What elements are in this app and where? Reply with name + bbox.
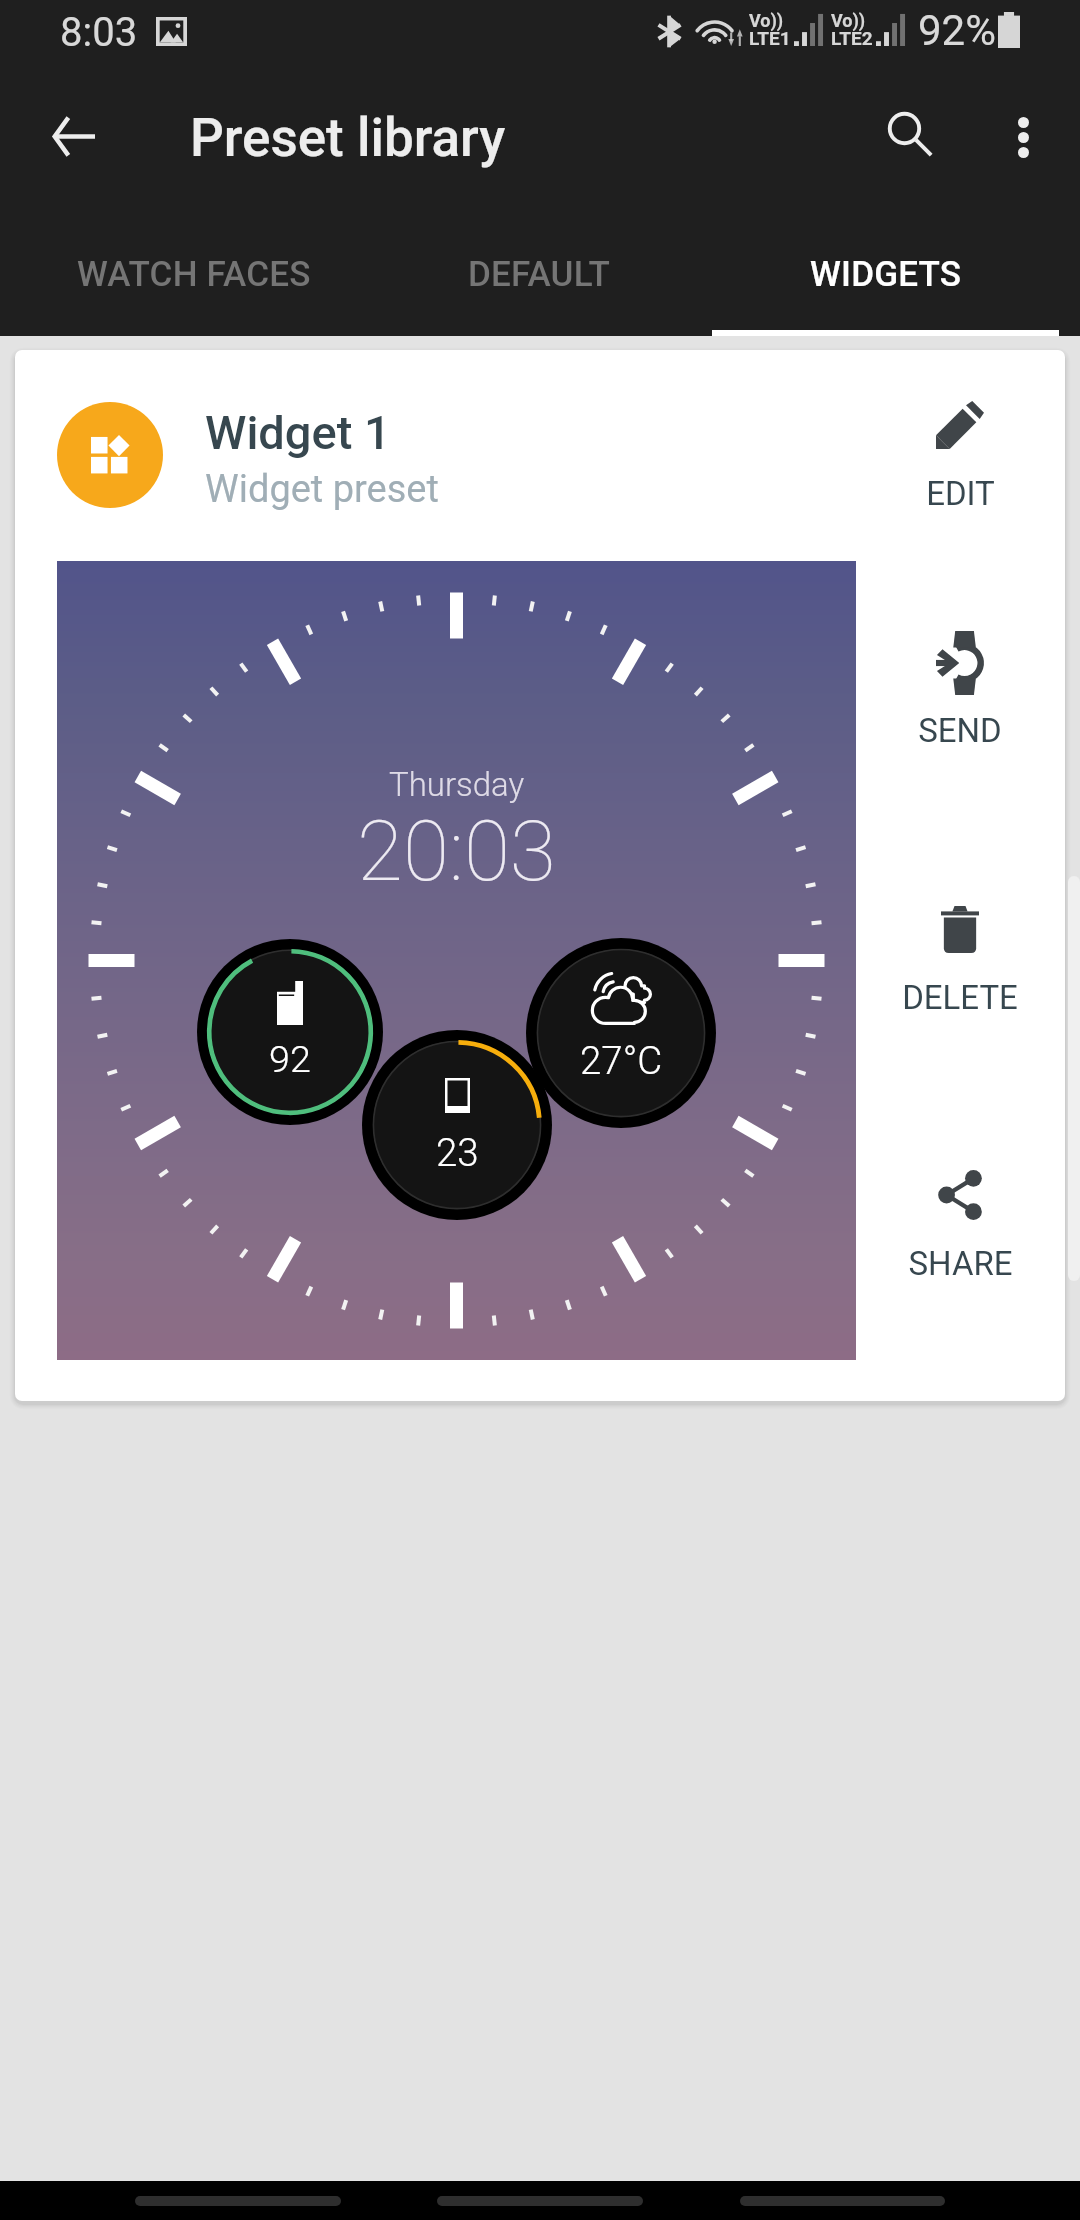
button[interactable]: SHARE [855, 1169, 1065, 1344]
staticText: DEFAULT [468, 254, 611, 295]
staticText: WIDGETS [810, 254, 962, 295]
staticText: 8:03 [60, 9, 138, 56]
button[interactable]: DEFAULT [366, 230, 713, 336]
staticText: 27°C [580, 1038, 663, 1083]
button[interactable]: Search [841, 66, 981, 206]
button[interactable]: SEND [855, 631, 1065, 806]
button[interactable]: WATCH FACES [20, 230, 367, 336]
button[interactable]: DELETE [855, 906, 1065, 1081]
staticText: SHARE [908, 1244, 1013, 1283]
staticText: LTE2 [831, 27, 873, 49]
staticText: Widget preset [205, 467, 439, 512]
button[interactable]: Back [0, 66, 147, 206]
button[interactable]: More options [953, 66, 1080, 206]
staticText: Thursday [389, 765, 525, 804]
staticText: Preset library [190, 107, 506, 169]
staticText: EDIT [926, 474, 995, 513]
staticText: 92% [918, 6, 996, 55]
button[interactable]: WIDGETS [712, 230, 1059, 336]
button[interactable]: Back [135, 2196, 341, 2206]
staticText: 20:03 [357, 802, 556, 900]
button[interactable]: Widget 1 [15, 350, 1065, 1401]
staticText: WATCH FACES [77, 254, 311, 295]
staticText: 92 [269, 1037, 311, 1081]
staticText: Vo)) [831, 10, 866, 31]
button[interactable]: EDIT [855, 401, 1065, 576]
staticText: SEND [918, 711, 1002, 750]
button[interactable]: Home [437, 2196, 643, 2206]
staticText: DELETE [902, 978, 1018, 1017]
staticText: 23 [436, 1130, 479, 1175]
staticText: Vo)) [749, 10, 784, 31]
staticText: LTE1 [749, 27, 791, 49]
staticText: Widget 1 [205, 405, 391, 460]
button[interactable]: Recents [740, 2196, 945, 2206]
